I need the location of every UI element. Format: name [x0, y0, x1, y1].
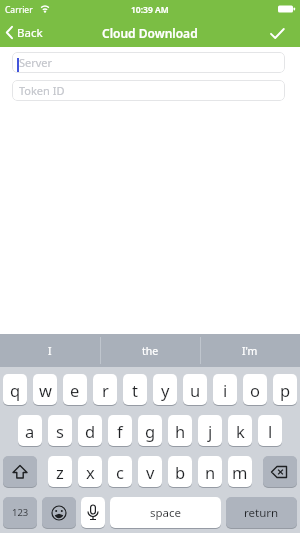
staticText: s — [56, 420, 64, 442]
staticText: e — [70, 379, 80, 401]
button[interactable]: p — [273, 374, 297, 405]
button[interactable] — [42, 497, 76, 528]
button[interactable]: u — [183, 374, 207, 405]
staticText: Token ID — [19, 83, 65, 98]
staticText: I — [48, 344, 52, 358]
button[interactable]: g — [138, 415, 162, 446]
button[interactable] — [3, 456, 37, 487]
staticText: x — [86, 461, 95, 483]
button[interactable]: w — [33, 374, 57, 405]
staticText: m — [232, 461, 248, 483]
staticText: Server — [19, 55, 53, 70]
staticText: c — [116, 461, 124, 483]
button[interactable] — [81, 497, 105, 528]
staticText: d — [85, 420, 96, 442]
staticText: n — [205, 461, 216, 483]
button[interactable]: v — [138, 456, 162, 487]
button[interactable]: the — [100, 334, 200, 367]
button[interactable]: Token ID — [12, 80, 285, 101]
staticText: return — [244, 505, 279, 521]
button[interactable]: z — [48, 456, 72, 487]
staticText: t — [132, 379, 138, 401]
staticText: 123 — [12, 506, 29, 519]
staticText: h — [175, 420, 186, 442]
button[interactable]: I'm — [200, 334, 300, 367]
button[interactable]: l — [258, 415, 282, 446]
staticText: I'm — [242, 344, 258, 358]
staticText: Back — [17, 25, 43, 41]
staticText: r — [102, 379, 109, 401]
button[interactable] — [260, 21, 294, 44]
staticText: j — [208, 420, 213, 442]
button[interactable]: d — [78, 415, 102, 446]
button[interactable]: i — [213, 374, 237, 405]
staticText: l — [268, 420, 273, 442]
button[interactable]: o — [243, 374, 267, 405]
button[interactable] — [263, 456, 297, 487]
button[interactable]: h — [168, 415, 192, 446]
staticText: z — [56, 461, 64, 483]
staticText: 10:39 AM — [131, 4, 169, 16]
button[interactable]: Back — [2, 21, 50, 44]
staticText: g — [145, 420, 156, 442]
button[interactable]: c — [108, 456, 132, 487]
button[interactable]: e — [63, 374, 87, 405]
button[interactable]: Server — [12, 52, 285, 73]
button[interactable]: space — [110, 497, 221, 528]
button[interactable]: a — [18, 415, 42, 446]
button[interactable]: q — [3, 374, 27, 405]
button[interactable]: n — [198, 456, 222, 487]
button[interactable]: y — [153, 374, 177, 405]
staticText: w — [39, 379, 52, 401]
staticText: Carrier — [5, 4, 33, 16]
button[interactable]: x — [78, 456, 102, 487]
button[interactable]: 123 — [3, 497, 37, 528]
button[interactable]: b — [168, 456, 192, 487]
staticText: k — [236, 420, 245, 442]
button[interactable]: k — [228, 415, 252, 446]
staticText: the — [142, 344, 159, 358]
button[interactable]: m — [228, 456, 252, 487]
button[interactable]: r — [93, 374, 117, 405]
staticText: a — [25, 420, 35, 442]
staticText: u — [190, 379, 201, 401]
button[interactable]: s — [48, 415, 72, 446]
button[interactable]: return — [226, 497, 297, 528]
staticText: f — [117, 420, 123, 442]
button[interactable]: j — [198, 415, 222, 446]
staticText: b — [175, 461, 186, 483]
staticText: p — [280, 379, 291, 401]
staticText: v — [146, 461, 155, 483]
staticText: q — [10, 379, 21, 401]
staticText: y — [161, 379, 170, 401]
staticText: space — [150, 505, 182, 521]
button[interactable]: t — [123, 374, 147, 405]
staticText: Cloud Download — [102, 25, 198, 41]
staticText: i — [223, 379, 228, 401]
button[interactable]: f — [108, 415, 132, 446]
staticText: o — [250, 379, 260, 401]
button[interactable]: I — [0, 334, 100, 367]
